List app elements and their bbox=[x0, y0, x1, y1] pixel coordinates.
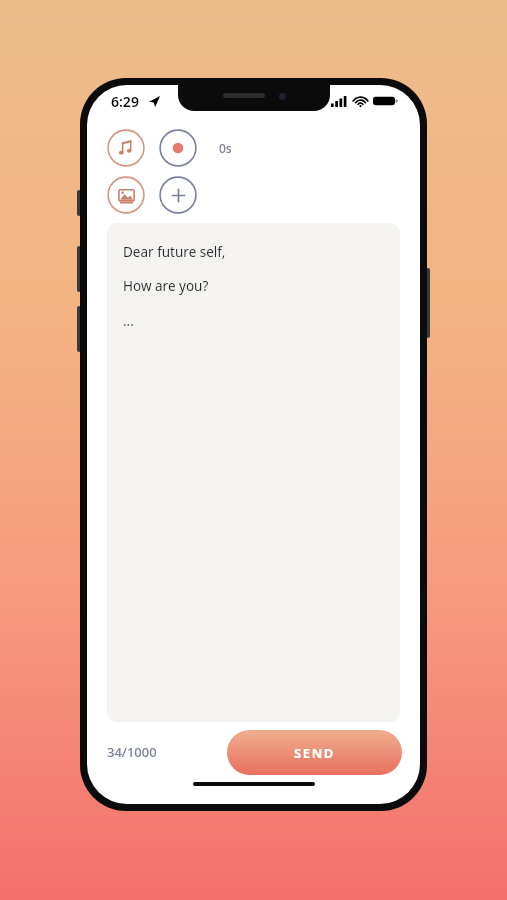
button[interactable]: Record audio bbox=[159, 129, 197, 167]
staticText: Dear future self, bbox=[123, 243, 226, 261]
button[interactable]: SEND bbox=[227, 730, 402, 775]
button[interactable]: Add attachment bbox=[159, 176, 197, 214]
staticText: How are you? bbox=[123, 277, 209, 295]
staticText: 6:29 bbox=[111, 92, 139, 111]
staticText: SEND bbox=[294, 744, 335, 762]
button[interactable]: Add music bbox=[107, 129, 145, 167]
staticText: 34/1000 bbox=[107, 743, 157, 761]
button[interactable]: Dear future self, bbox=[107, 223, 400, 722]
button[interactable]: Add photo bbox=[107, 176, 145, 214]
staticText: 0s bbox=[219, 140, 232, 156]
staticText: ... bbox=[123, 312, 134, 330]
